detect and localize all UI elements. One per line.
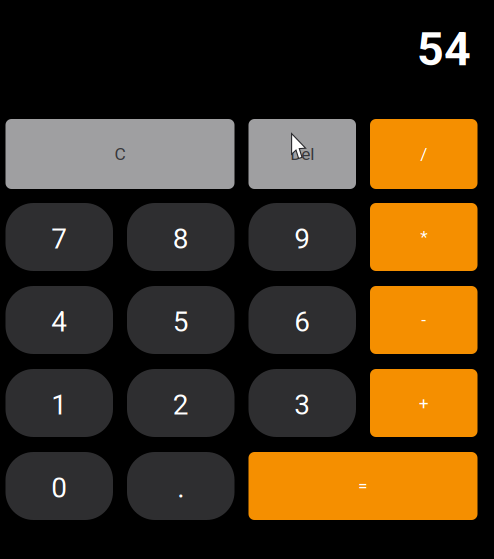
staticText: C <box>114 144 125 164</box>
button[interactable]: 3 <box>248 369 356 437</box>
button[interactable]: 4 <box>5 286 113 354</box>
staticText: 5 <box>173 306 189 338</box>
staticText: / <box>420 144 427 164</box>
staticText: 6 <box>294 306 310 338</box>
button[interactable]: 7 <box>5 203 113 271</box>
button[interactable]: 0 <box>5 452 113 520</box>
staticText: - <box>421 310 426 330</box>
staticText: 3 <box>294 389 310 421</box>
button[interactable]: Decimal point <box>127 452 234 520</box>
staticText: 7 <box>51 223 67 255</box>
button[interactable]: 5 <box>127 286 234 354</box>
staticText: Del <box>290 144 314 164</box>
staticText: 2 <box>173 389 189 421</box>
button[interactable]: Multiply <box>370 203 477 271</box>
staticText: * <box>420 227 427 247</box>
button[interactable]: Plus <box>370 369 477 437</box>
button[interactable]: Equals <box>248 452 477 520</box>
button[interactable]: Delete <box>248 119 356 189</box>
staticText: 9 <box>294 223 310 255</box>
button[interactable]: Clear <box>5 119 234 189</box>
staticText: = <box>358 476 368 496</box>
staticText: 1 <box>51 389 67 421</box>
staticText: 54 <box>417 22 471 77</box>
button[interactable]: 1 <box>5 369 113 437</box>
button[interactable]: Minus <box>370 286 477 354</box>
button[interactable]: 2 <box>127 369 234 437</box>
button[interactable]: 6 <box>248 286 356 354</box>
button[interactable]: 9 <box>248 203 356 271</box>
staticText: 0 <box>51 472 67 504</box>
staticText: . <box>177 472 184 504</box>
staticText: 8 <box>173 223 189 255</box>
button[interactable]: 8 <box>127 203 234 271</box>
staticText: 4 <box>51 306 67 338</box>
button[interactable]: Divide <box>370 119 477 189</box>
staticText: + <box>419 393 429 413</box>
